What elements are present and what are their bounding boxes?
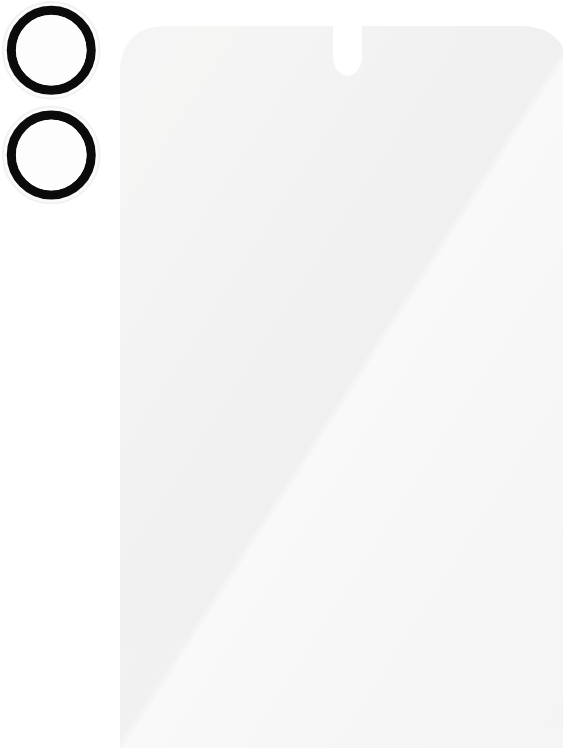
button[interactable]: Tempered glass screen protector with two… [0,0,563,748]
